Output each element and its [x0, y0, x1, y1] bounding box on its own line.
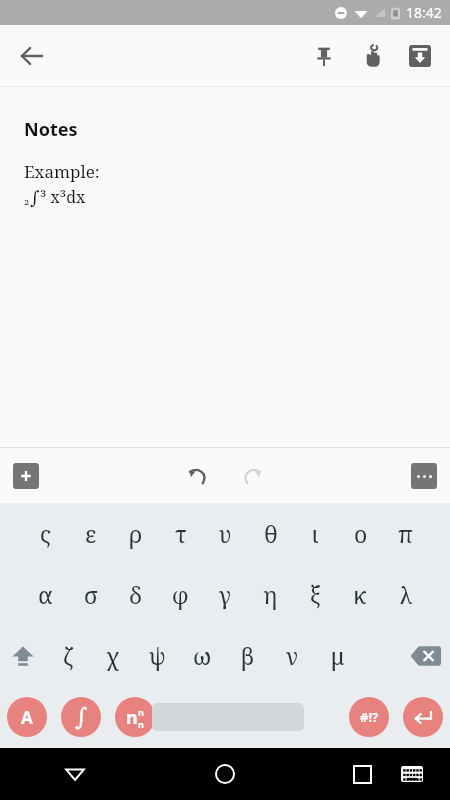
staticText: ω [193, 640, 212, 671]
button[interactable]: ρ [113, 503, 158, 564]
button[interactable]: ε [68, 503, 113, 564]
button[interactable]: Symbols [349, 697, 389, 737]
staticText: λ [399, 579, 413, 610]
staticText: n [138, 706, 144, 718]
staticText: ₂ [24, 190, 30, 208]
staticText: δ [129, 579, 143, 610]
staticText: ο [354, 518, 368, 549]
button[interactable]: χ [90, 625, 135, 686]
button[interactable]: Integral symbols [61, 697, 101, 737]
staticText: ε [85, 518, 97, 549]
button[interactable]: ξ [293, 564, 338, 625]
staticText: ν [286, 640, 299, 671]
button[interactable]: μ [315, 625, 360, 686]
staticText: A [21, 706, 33, 729]
staticText: κ [354, 579, 367, 610]
button[interactable]: β [225, 625, 270, 686]
button[interactable]: Superscript and subscript [115, 697, 155, 737]
staticText: β [241, 640, 255, 671]
staticText: n [138, 718, 144, 730]
button[interactable]: Switch keyboard [388, 750, 436, 798]
staticText: n [126, 705, 138, 730]
staticText: τ [175, 518, 187, 549]
button[interactable]: Home [170, 748, 280, 800]
staticText: φ [172, 579, 189, 610]
staticText: θ [264, 518, 278, 549]
staticText: ι [312, 518, 319, 549]
staticText: ψ [149, 640, 166, 671]
button[interactable]: ς [23, 503, 68, 564]
button[interactable]: More options [411, 463, 437, 489]
staticText: ς [40, 518, 52, 549]
staticText: ∫ [75, 703, 88, 731]
button[interactable]: Pin [300, 32, 348, 80]
button[interactable]: Redo [229, 453, 275, 499]
button[interactable]: γ [203, 564, 248, 625]
button[interactable]: ο [338, 503, 383, 564]
button[interactable]: τ [158, 503, 203, 564]
staticText: υ [219, 518, 232, 549]
staticText: #!? [360, 708, 379, 726]
staticText: ³ x³dx [40, 186, 86, 208]
staticText: χ [106, 640, 119, 671]
button[interactable]: π [383, 503, 428, 564]
button[interactable]: Shift [0, 625, 45, 686]
button[interactable]: κ [338, 564, 383, 625]
staticText: ρ [129, 518, 143, 549]
button[interactable]: ν [270, 625, 315, 686]
staticText: α [38, 579, 53, 610]
staticText: π [398, 518, 413, 549]
button[interactable]: σ [68, 564, 113, 625]
staticText: σ [84, 579, 98, 610]
button[interactable]: ζ [45, 625, 90, 686]
button[interactable]: α [23, 564, 68, 625]
button[interactable]: λ [383, 564, 428, 625]
button[interactable]: ι [293, 503, 338, 564]
button[interactable]: δ [113, 564, 158, 625]
staticText: ζ [63, 640, 73, 671]
button[interactable]: Handwriting input [348, 32, 396, 80]
button[interactable]: υ [203, 503, 248, 564]
button[interactable]: Back [8, 32, 56, 80]
button[interactable]: η [248, 564, 293, 625]
staticText: μ [331, 640, 345, 671]
button[interactable]: ψ [135, 625, 180, 686]
staticText: η [263, 579, 278, 610]
button[interactable]: Back [0, 748, 150, 800]
staticText: Example: [24, 160, 100, 183]
staticText: 18:42 [406, 3, 442, 22]
staticText: γ [219, 579, 232, 610]
staticText: ξ [310, 579, 321, 610]
button[interactable]: Backspace [400, 625, 450, 686]
button[interactable]: Undo [175, 453, 221, 499]
button[interactable]: Add [13, 463, 39, 489]
button[interactable]: Enter [403, 697, 443, 737]
button[interactable]: θ [248, 503, 293, 564]
button[interactable]: φ [158, 564, 203, 625]
button[interactable]: ω [180, 625, 225, 686]
staticText: Notes [24, 117, 78, 142]
button[interactable]: Alphabet keyboard [7, 697, 47, 737]
staticText: ∫ [30, 187, 40, 208]
button[interactable]: Save [396, 32, 444, 80]
button[interactable]: Recent apps [336, 748, 388, 800]
